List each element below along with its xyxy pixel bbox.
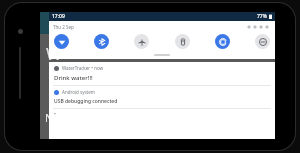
button[interactable]: Wi-Fi — [54, 34, 69, 49]
button[interactable]: Android system — [49, 86, 275, 108]
staticText: Drink water!!! — [54, 74, 93, 82]
button[interactable]: Bluetooth — [94, 34, 109, 49]
button[interactable]: WaterTracker • now — [49, 62, 275, 85]
staticText: USB debugging connected — [54, 98, 118, 105]
staticText: No — [45, 110, 61, 125]
staticText: WaterTracker • now — [62, 65, 104, 71]
staticText: W — [46, 42, 62, 65]
staticText: Android system — [62, 89, 95, 95]
staticText: • — [54, 111, 56, 118]
staticText: 17:09 — [52, 13, 65, 20]
button[interactable]: Airplane mode — [134, 34, 149, 49]
button[interactable]: Auto-rotate — [215, 34, 230, 49]
button[interactable]: Expand quick settings — [154, 54, 170, 56]
staticText: Thu 2 Sep — [53, 24, 74, 30]
button[interactable]: Flashlight — [175, 34, 190, 49]
staticText: 77% — [257, 13, 267, 20]
button[interactable]: Do not disturb — [255, 34, 270, 49]
